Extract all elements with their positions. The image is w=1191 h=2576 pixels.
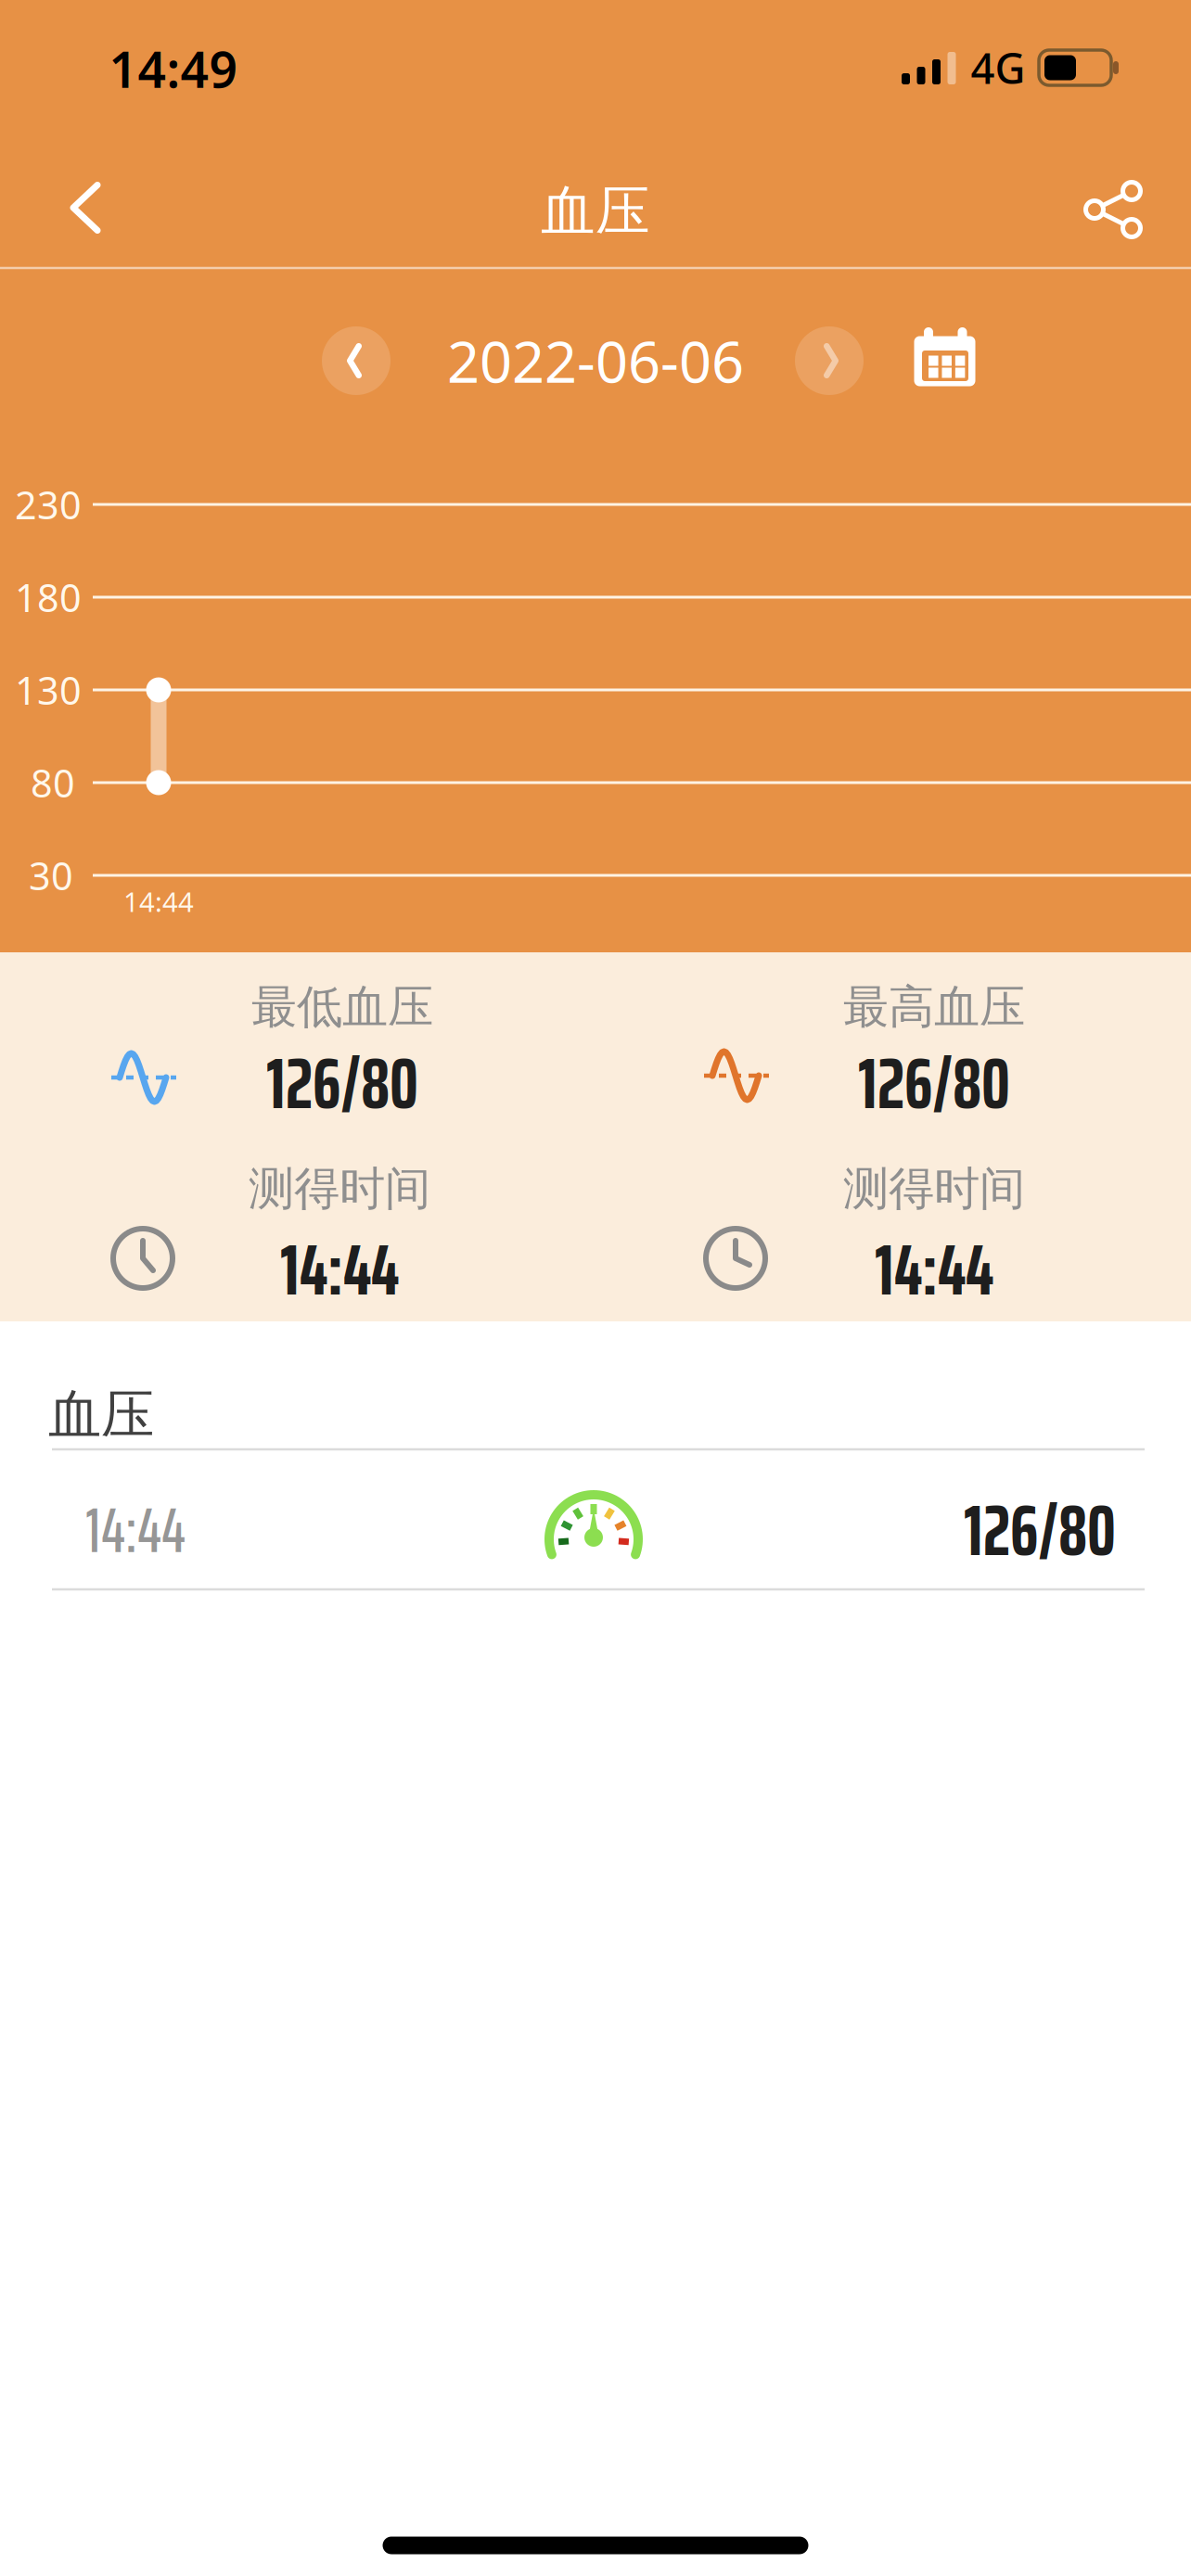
staticText: 14:49 — [109, 36, 238, 101]
button[interactable]: Choose date — [912, 327, 977, 392]
button[interactable]: Previous day — [322, 326, 391, 395]
staticText: 126/80 — [964, 1474, 1116, 1586]
staticText: 测得时间 — [843, 1161, 1025, 1217]
staticText: 126/80 — [266, 1027, 418, 1139]
button[interactable]: Back — [56, 172, 115, 243]
staticText: 14:44 — [875, 1213, 993, 1326]
button[interactable]: Next day — [795, 326, 864, 395]
staticText: 130 — [15, 664, 82, 715]
staticText: 测得时间 — [249, 1161, 430, 1217]
staticText: 血压 — [48, 1382, 154, 1448]
staticText: 血压 — [541, 178, 650, 245]
staticText: 80 — [31, 757, 75, 808]
staticText: 126/80 — [858, 1027, 1010, 1139]
staticText: 最低血压 — [251, 979, 433, 1035]
staticText: 2022-06-06 — [447, 323, 744, 398]
staticText: 14:44 — [280, 1213, 399, 1326]
button[interactable]: 14:44 — [63, 1460, 1128, 1600]
staticText: 4G — [971, 40, 1025, 96]
staticText: 30 — [29, 850, 73, 901]
staticText: 14:44 — [123, 883, 194, 919]
staticText: 180 — [15, 572, 82, 623]
button[interactable]: Share — [1084, 181, 1142, 238]
staticText: 最高血压 — [843, 979, 1025, 1035]
staticText: 14:44 — [85, 1480, 186, 1580]
staticText: 230 — [15, 479, 82, 530]
